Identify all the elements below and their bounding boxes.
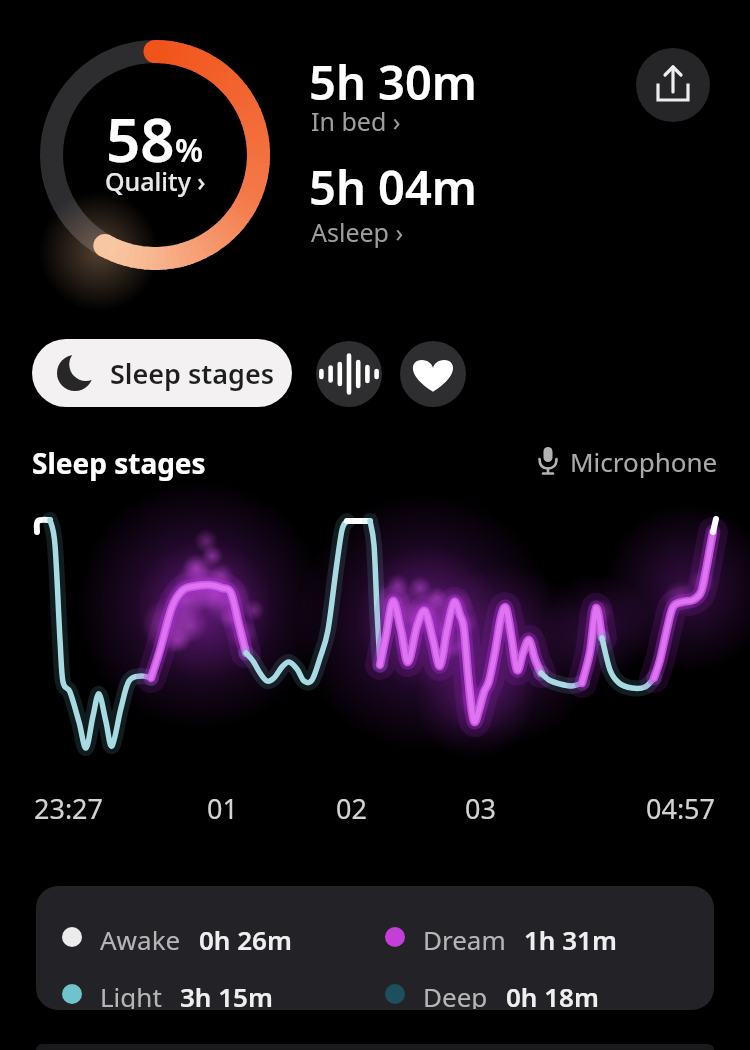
staticText: 1h 31m [524,922,617,952]
staticText: 23:27 [34,790,104,827]
staticText: Microphone [570,444,718,479]
staticText: Awake [100,922,181,952]
staticText: Deep [423,979,488,1009]
button[interactable]: Asleep › [311,215,404,249]
staticText: 04:57 [646,790,716,827]
staticText: Sleep stages [110,355,275,392]
button[interactable]: 58 [40,98,270,180]
button[interactable]: 5h 30m [309,50,477,114]
staticText: 02 [336,790,367,827]
staticText: 3h 15m [180,979,273,1009]
staticText: 0h 26m [199,922,292,952]
staticText: Quality › [105,164,206,198]
button[interactable]: Microphone [536,444,718,479]
button[interactable] [316,341,382,407]
staticText: 58 [106,98,175,180]
staticText: Sleep stages [32,444,206,482]
button[interactable] [400,341,466,407]
staticText: 01 [207,790,238,827]
staticText: Dream [423,922,506,952]
staticText: 03 [465,790,496,827]
button[interactable] [636,48,710,122]
staticText: Light [100,979,162,1009]
button[interactable]: 5h 04m [309,155,477,219]
button[interactable]: Quality › [40,164,270,198]
staticText: 0h 18m [506,979,599,1009]
button[interactable]: Sleep stages [32,339,292,407]
staticText: % [175,128,204,172]
button[interactable]: In bed › [311,104,401,138]
